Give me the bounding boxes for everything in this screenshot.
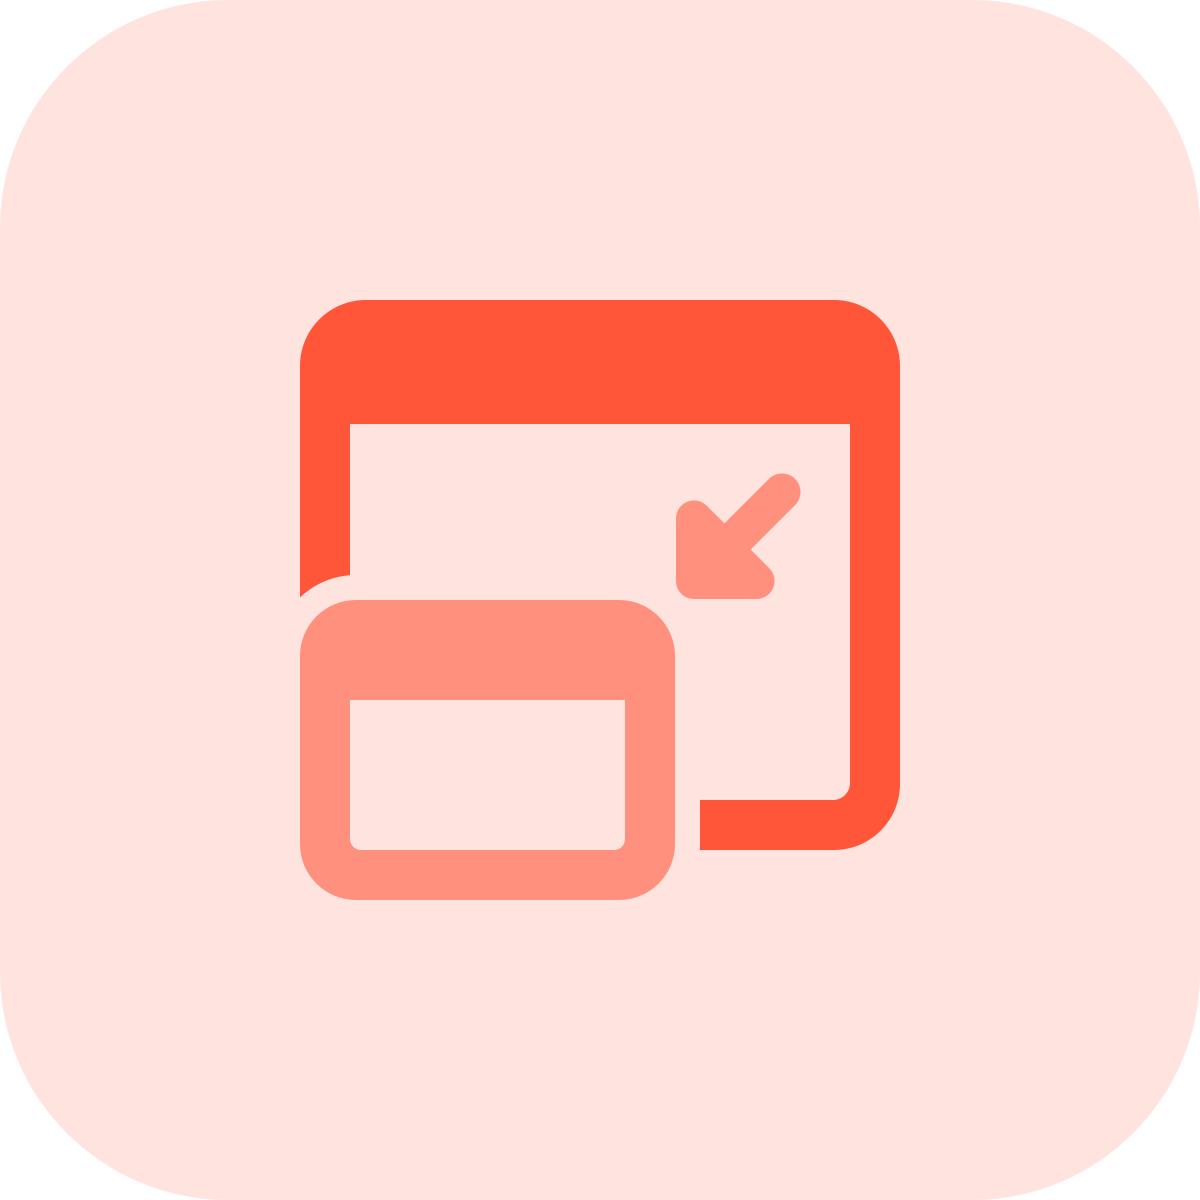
button[interactable]: Open in new window xyxy=(0,0,1200,1200)
